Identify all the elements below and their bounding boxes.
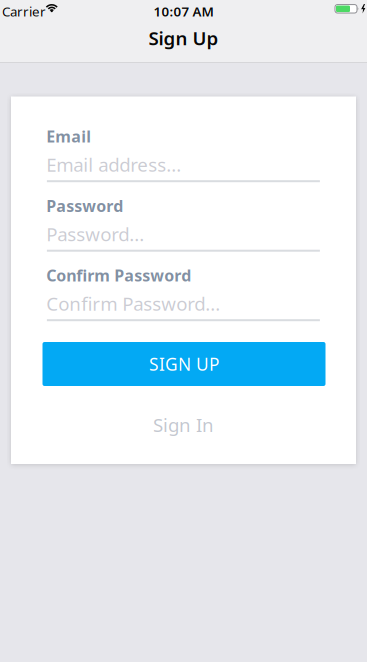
staticText: Password [46,195,123,216]
button[interactable]: Confirm Password... [47,289,320,321]
staticText: Sign Up [148,26,218,50]
button[interactable]: Sign In [11,408,356,442]
staticText: Password... [46,221,144,246]
staticText: SIGN UP [149,352,219,375]
staticText: Email [46,126,91,147]
staticText: Email address... [46,152,181,177]
staticText: Carrier [2,2,46,20]
staticText: Sign In [153,412,214,437]
button[interactable]: SIGN UP [42,342,325,386]
button[interactable]: Password... [47,219,320,252]
staticText: 10:07 AM [153,2,213,20]
button[interactable]: Email address... [47,150,320,182]
staticText: Confirm Password [46,265,191,286]
staticText: Confirm Password... [46,291,220,316]
